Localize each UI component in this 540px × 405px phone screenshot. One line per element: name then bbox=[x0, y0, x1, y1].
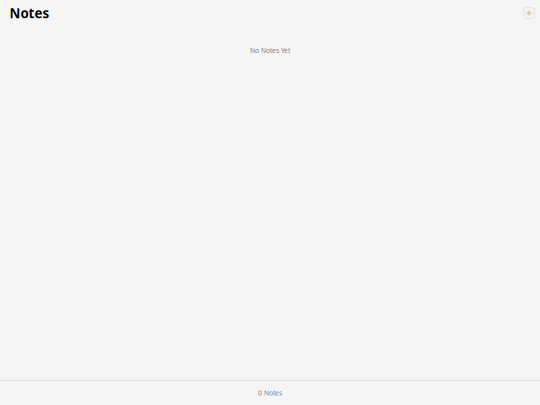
staticText: 0 Notes bbox=[258, 389, 282, 397]
button[interactable]: New Note bbox=[520, 2, 538, 24]
staticText: Notes bbox=[9, 4, 49, 22]
staticText: No Notes Yet bbox=[250, 46, 290, 55]
